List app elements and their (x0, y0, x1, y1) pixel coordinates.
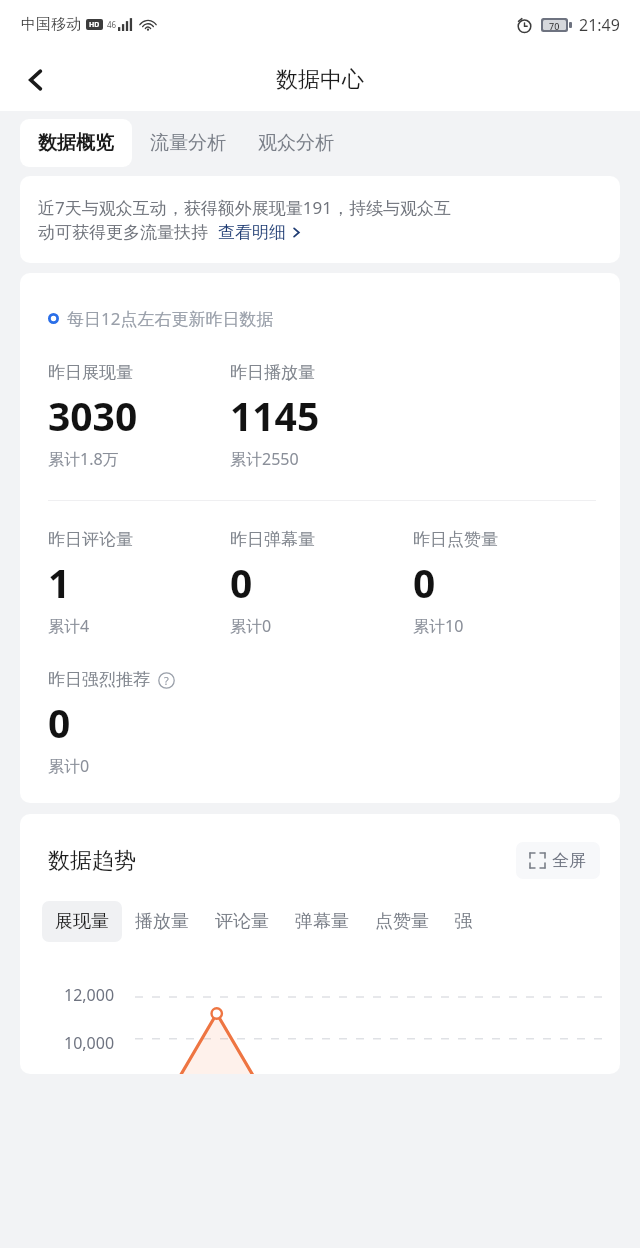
staticText: HD (89, 20, 100, 30)
staticText: 全屏 (552, 850, 586, 871)
button[interactable]: 帮助 (157, 671, 175, 689)
staticText: 12,000 (64, 984, 115, 1006)
staticText: 展现量 (55, 910, 109, 933)
staticText: 昨日点赞量 (413, 529, 498, 550)
staticText: 数据趋势 (48, 847, 136, 875)
staticText: 评论量 (215, 910, 269, 933)
staticText: 昨日评论量 (48, 529, 133, 550)
staticText: 累计10 (413, 615, 464, 637)
staticText: 昨日播放量 (230, 362, 315, 383)
staticText: 数据概览 (38, 131, 114, 155)
staticText: 查看明细 (218, 222, 286, 243)
staticText: 0 (48, 696, 71, 749)
staticText: 21:49 (579, 14, 620, 36)
staticText: 0 (413, 556, 436, 609)
staticText: 1145 (230, 389, 320, 442)
staticText: 46 (107, 19, 117, 30)
button[interactable]: 点赞量 (362, 901, 442, 942)
button[interactable]: 播放量 (122, 901, 202, 942)
staticText: 近7天与观众互动，获得额外展现量191，持续与观众互 (38, 196, 451, 219)
button[interactable]: 强 (442, 901, 484, 942)
staticText: 弹幕量 (295, 910, 349, 933)
staticText: 播放量 (135, 910, 189, 933)
staticText: 累计4 (48, 615, 90, 637)
staticText: 70 (549, 20, 560, 30)
staticText: 0 (230, 556, 253, 609)
button[interactable]: 全屏 (516, 842, 600, 879)
staticText: 点赞量 (375, 910, 429, 933)
staticText: 昨日弹幕量 (230, 529, 315, 550)
staticText: 数据中心 (276, 66, 364, 94)
staticText: ? (164, 673, 169, 688)
staticText: 观众分析 (258, 131, 334, 155)
staticText: 累计0 (48, 755, 90, 777)
button[interactable]: 弹幕量 (282, 901, 362, 942)
staticText: 动可获得更多流量扶持 (38, 222, 208, 243)
button[interactable]: 评论量 (202, 901, 282, 942)
button[interactable]: 观众分析 (244, 119, 348, 167)
staticText: 每日12点左右更新昨日数据 (67, 307, 274, 330)
staticText: 累计2550 (230, 448, 299, 470)
staticText: 昨日强烈推荐 (48, 669, 150, 690)
staticText: 累计0 (230, 615, 272, 637)
staticText: 1 (48, 556, 71, 609)
staticText: 累计1.8万 (48, 448, 119, 470)
staticText: 流量分析 (150, 131, 226, 155)
staticText: 强 (454, 910, 472, 933)
button[interactable]: 数据概览 (20, 119, 132, 167)
staticText: 3030 (48, 389, 138, 442)
button[interactable]: 近7天与观众互动，获得额外展现量191，持续与观众互 (20, 176, 620, 263)
button[interactable]: 流量分析 (132, 119, 244, 167)
button[interactable]: Back (10, 54, 62, 106)
staticText: 中国移动 (21, 15, 81, 34)
staticText: 10,000 (64, 1032, 115, 1054)
button[interactable]: 展现量 (42, 901, 122, 942)
staticText: 昨日展现量 (48, 362, 133, 383)
